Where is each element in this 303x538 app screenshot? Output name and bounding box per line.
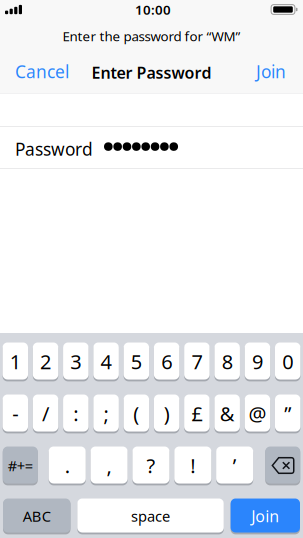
staticText: : <box>73 400 78 427</box>
button[interactable]: 2 <box>33 343 58 380</box>
staticText: ; <box>104 400 109 427</box>
staticText: Join <box>251 505 279 527</box>
button[interactable]: Join <box>231 499 300 533</box>
staticText: 10:00 <box>135 1 171 18</box>
staticText: ABC <box>23 506 51 526</box>
button[interactable]: ’ <box>216 447 253 484</box>
staticText: @ <box>248 400 266 427</box>
staticText: 7 <box>191 348 202 375</box>
button[interactable]: 5 <box>124 343 149 380</box>
staticText: 2 <box>40 348 51 375</box>
button[interactable]: Delete <box>265 447 300 484</box>
staticText: & <box>220 400 235 427</box>
staticText: 8 <box>222 348 233 375</box>
button[interactable]: #+= <box>3 447 38 484</box>
button[interactable]: ( <box>124 395 149 432</box>
staticText: Enter Password <box>91 62 211 83</box>
button[interactable]: ABC <box>3 499 70 533</box>
staticText: , <box>107 452 112 479</box>
staticText: Join <box>256 60 286 83</box>
button[interactable]: : <box>63 395 89 432</box>
button[interactable]: 4 <box>93 343 119 380</box>
button[interactable]: 8 <box>214 343 240 380</box>
button[interactable]: ? <box>132 447 169 484</box>
button[interactable]: ; <box>93 395 119 432</box>
staticText: ’ <box>233 452 237 479</box>
button[interactable]: ” <box>275 395 300 432</box>
button[interactable]: , <box>90 447 128 484</box>
button[interactable]: ) <box>154 395 179 432</box>
button[interactable]: 0 <box>275 343 300 380</box>
staticText: 5 <box>131 348 142 375</box>
staticText: / <box>42 400 49 427</box>
button[interactable]: / <box>33 395 58 432</box>
staticText: 9 <box>252 348 263 375</box>
staticText: 0 <box>282 348 293 375</box>
staticText: Cancel <box>15 60 69 83</box>
staticText: ! <box>190 452 195 479</box>
staticText: ” <box>284 400 291 427</box>
staticText: 6 <box>161 348 172 375</box>
button[interactable]: 9 <box>245 343 270 380</box>
button[interactable]: 1 <box>2 343 28 380</box>
staticText: Enter the password for “WM” <box>62 27 240 45</box>
button[interactable]: ! <box>174 447 211 484</box>
staticText: £ <box>191 400 202 427</box>
staticText: - <box>12 400 18 427</box>
button[interactable]: 3 <box>63 343 89 380</box>
button[interactable]: 6 <box>154 343 179 380</box>
button[interactable]: 7 <box>184 343 210 380</box>
staticText: #+= <box>8 456 33 475</box>
staticText: 4 <box>101 348 112 375</box>
button[interactable]: . <box>49 447 86 484</box>
staticText: . <box>65 452 70 479</box>
staticText: 1 <box>10 348 21 375</box>
button[interactable]: space <box>77 499 224 533</box>
button[interactable]: Cancel <box>15 57 69 80</box>
button[interactable]: - <box>2 395 28 432</box>
button[interactable]: & <box>214 395 240 432</box>
staticText: ( <box>133 400 139 427</box>
staticText: ) <box>164 400 170 427</box>
staticText: ? <box>146 452 155 479</box>
staticText: Password <box>15 138 93 161</box>
staticText: space <box>131 506 170 526</box>
button[interactable]: @ <box>245 395 270 432</box>
staticText: 3 <box>70 348 81 375</box>
button[interactable]: Join <box>256 57 286 80</box>
button[interactable]: £ <box>184 395 210 432</box>
